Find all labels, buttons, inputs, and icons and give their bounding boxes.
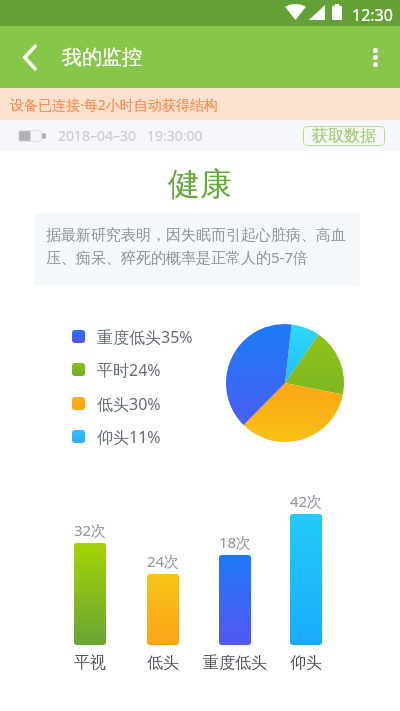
staticText: 重度低头35% [97, 326, 193, 348]
staticText: 平时24% [97, 359, 161, 381]
staticText: 2018–04–30 19:30:00 [58, 126, 203, 145]
staticText: 平视 [44, 653, 136, 673]
button[interactable]: 仰头11% [72, 424, 161, 449]
button[interactable]: 平时24% [72, 357, 161, 382]
button[interactable]: 低头30% [72, 391, 161, 416]
staticText: 低头 [117, 653, 209, 673]
staticText: 仰头 [260, 653, 352, 673]
button[interactable]: 重度低头35% [72, 324, 193, 349]
staticText: 获取数据 [312, 126, 376, 146]
staticText: 32次 [54, 520, 126, 540]
staticText: 健康 [0, 164, 400, 204]
staticText: 低头30% [97, 393, 161, 415]
staticText: 24次 [127, 551, 199, 571]
staticText: 设备已连接·每2小时自动获得结构 [10, 95, 218, 114]
staticText: 12:30 [352, 4, 393, 26]
staticText: 我的监控 [62, 45, 142, 70]
staticText: 仰头11% [97, 426, 161, 448]
staticText: 据最新研究表明，因失眠而引起心脏病、高血压、痴呆、猝死的概率是正常人的5-7倍 [46, 226, 352, 268]
button[interactable]: Back [4, 26, 56, 88]
staticText: 18次 [199, 532, 271, 552]
staticText: 42次 [270, 491, 342, 511]
staticText: 重度低头 [189, 653, 281, 673]
button[interactable]: More options [351, 26, 400, 88]
button[interactable]: 获取数据 [303, 126, 385, 146]
